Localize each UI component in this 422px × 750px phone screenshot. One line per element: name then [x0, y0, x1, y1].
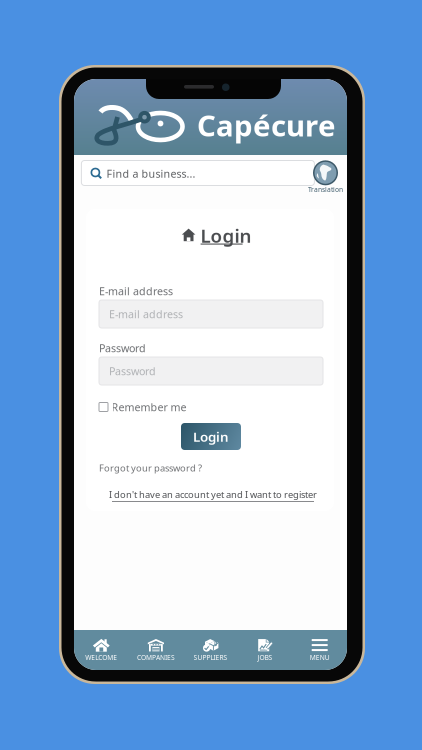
staticText: Find a business... — [106, 166, 195, 181]
staticText: Password — [109, 364, 156, 378]
staticText: I don't have an account yet and I want t… — [109, 488, 317, 501]
staticText: COMPANIES — [137, 653, 175, 662]
staticText: Translation — [308, 185, 343, 194]
staticText: E-mail address — [109, 307, 183, 321]
button[interactable]: WELCOME — [74, 630, 129, 670]
button[interactable]: Remember me — [99, 400, 219, 414]
button[interactable]: JOBS — [238, 630, 292, 670]
button[interactable]: COMPANIES — [129, 630, 183, 670]
button[interactable]: Login — [181, 423, 241, 450]
button[interactable]: I don't have an account yet and I want t… — [110, 488, 316, 502]
button[interactable]: SUPPLIERS — [183, 630, 238, 670]
staticText: JOBS — [258, 653, 273, 662]
staticText: E-mail address — [99, 284, 173, 298]
staticText: Forgot your password ? — [99, 462, 202, 474]
staticText: WELCOME — [85, 653, 117, 662]
staticText: Capécure — [197, 105, 336, 144]
staticText: Password — [99, 341, 146, 355]
staticText: Remember me — [111, 400, 186, 414]
staticText: SUPPLIERS — [193, 653, 227, 662]
button[interactable]: Find a business... — [81, 160, 314, 185]
staticText: Login — [201, 223, 252, 248]
staticText: Login — [193, 428, 229, 445]
button[interactable]: MENU — [292, 630, 347, 670]
staticText: MENU — [310, 653, 330, 662]
button[interactable]: Translation — [305, 161, 345, 194]
button[interactable]: Forgot your password ? — [99, 461, 239, 475]
